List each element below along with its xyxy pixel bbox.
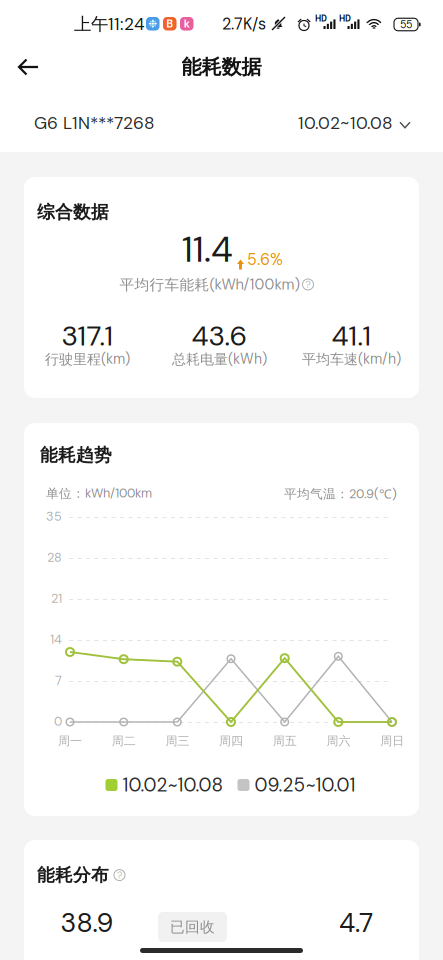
staticText: 11.4 <box>182 226 233 273</box>
staticText: 周日 <box>380 733 404 748</box>
staticText: 已回收 <box>170 918 215 936</box>
staticText: 周三 <box>165 733 189 748</box>
staticText: 35 <box>46 508 62 525</box>
staticText: 能耗分布 <box>37 864 109 886</box>
staticText: 0 <box>54 713 62 730</box>
staticText: 28 <box>47 549 62 566</box>
staticText: 总耗电量(kWh) <box>172 350 267 368</box>
staticText: 平均气温：20.9(℃) <box>284 485 397 502</box>
staticText: 行驶里程(km) <box>45 350 130 368</box>
staticText: 43.6 <box>191 318 247 354</box>
button[interactable]: Back <box>0 45 57 89</box>
staticText: 平均车速(km/h) <box>302 350 401 368</box>
staticText: 4.7 <box>339 906 373 940</box>
staticText: HD <box>315 13 327 24</box>
staticText: 55 <box>400 18 412 31</box>
staticText: k <box>184 17 190 31</box>
staticText: G6 L1N***7268 <box>34 112 155 134</box>
staticText: 能耗趋势 <box>40 444 112 466</box>
staticText: 38.9 <box>60 906 113 940</box>
staticText: 周二 <box>112 733 136 748</box>
staticText: 综合数据 <box>37 201 109 223</box>
staticText: 能耗数据 <box>181 54 261 80</box>
staticText: 21 <box>51 590 62 607</box>
staticText: 10.02~10.08 <box>122 773 223 797</box>
staticText: 10.02~10.08 <box>298 112 393 134</box>
staticText: B <box>166 17 173 31</box>
staticText: 317.1 <box>61 318 113 354</box>
staticText: 41.1 <box>331 318 371 354</box>
staticText: 上午11:24 <box>74 13 145 35</box>
staticText: 单位：kWh/100km <box>46 485 152 501</box>
button[interactable]: 10.02~10.08 <box>298 112 410 134</box>
staticText: ? <box>305 278 310 291</box>
staticText: 平均行车能耗(kWh/100km) <box>119 275 299 294</box>
staticText: 周一 <box>58 733 82 748</box>
staticText: 7 <box>55 672 62 689</box>
staticText: 周六 <box>326 733 350 748</box>
staticText: 09.25~10.01 <box>254 773 355 797</box>
staticText: 周五 <box>273 733 297 748</box>
staticText: 2.7K/s <box>222 14 266 34</box>
staticText: 5.6% <box>247 249 283 270</box>
staticText: HD <box>339 13 351 24</box>
staticText: 周四 <box>219 733 243 748</box>
staticText: ❉ <box>148 17 157 30</box>
staticText: 14 <box>50 631 62 648</box>
staticText: ? <box>117 869 122 881</box>
